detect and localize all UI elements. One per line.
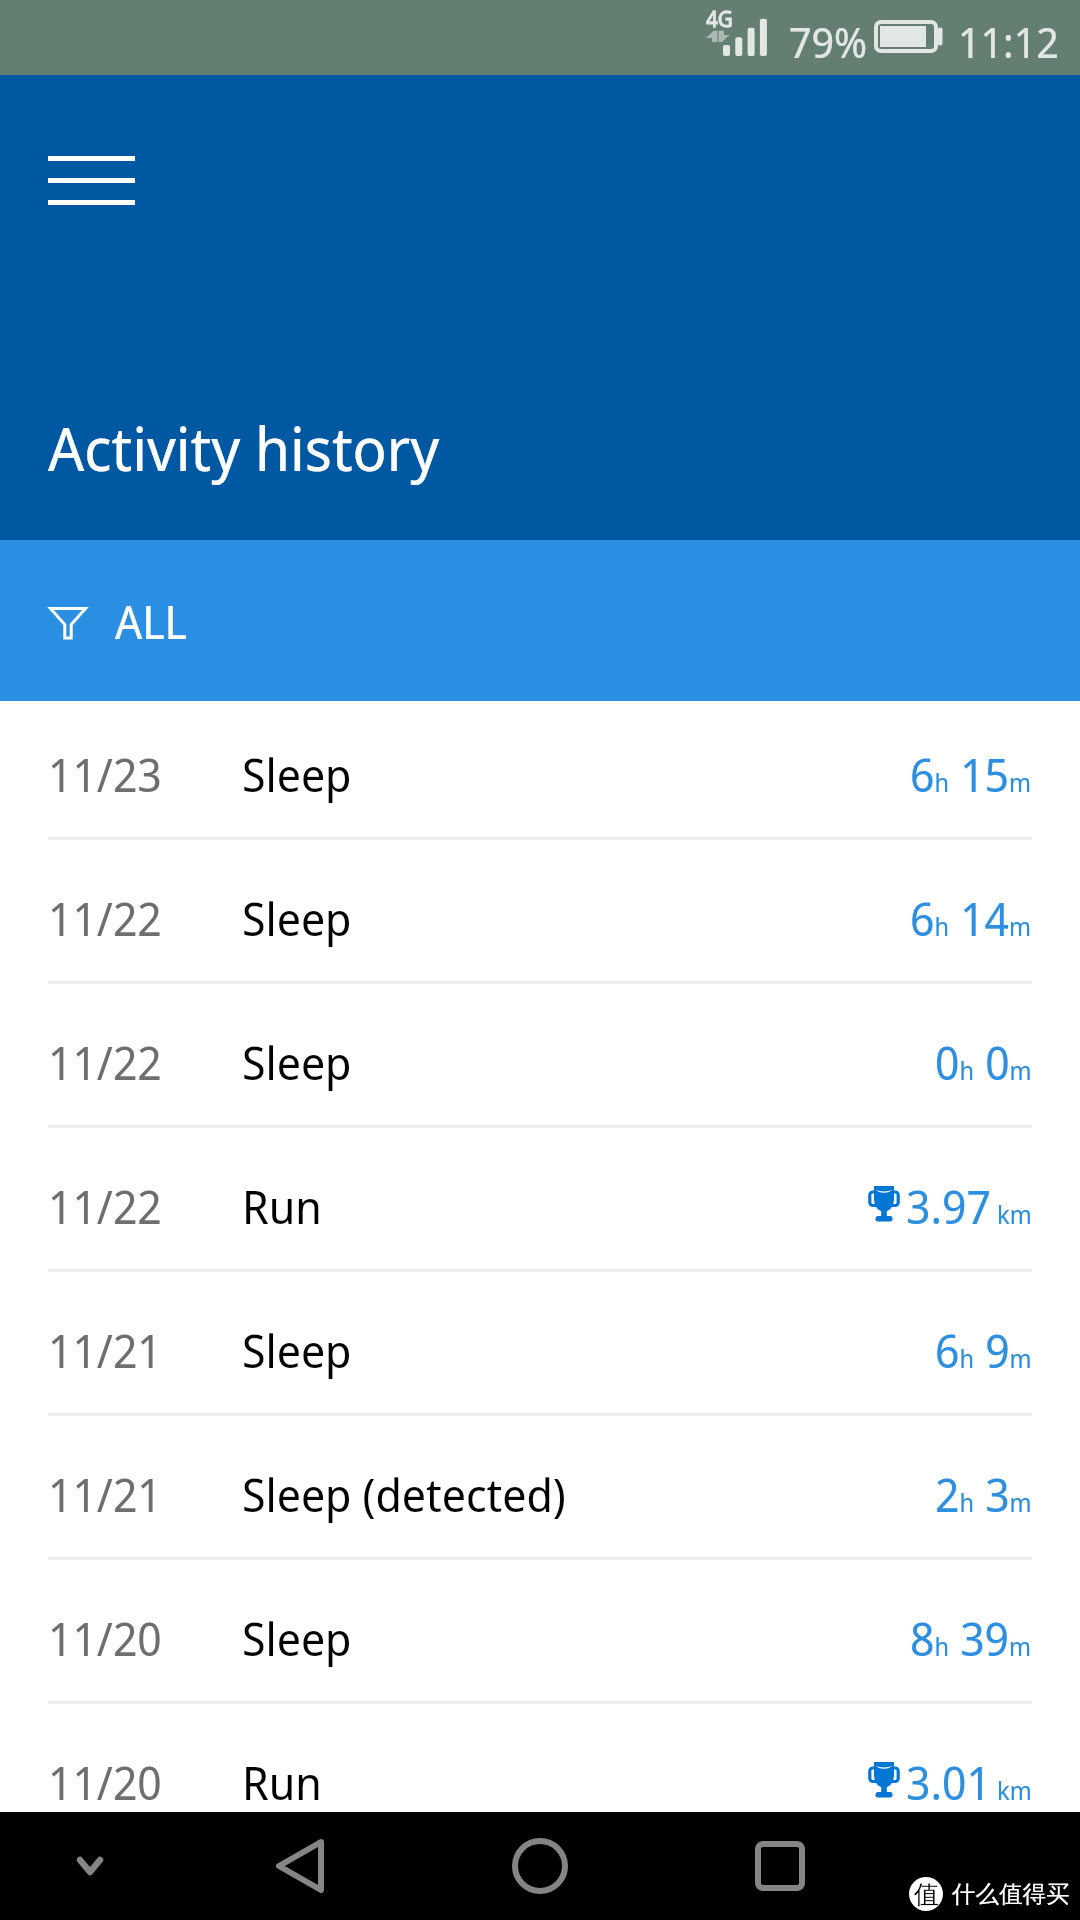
staticText: 11/22 [48, 887, 162, 949]
staticText: 6h 15m [910, 743, 1032, 805]
staticText: Sleep [242, 1607, 352, 1669]
button[interactable]: 11/22 [0, 984, 1080, 1128]
staticText: 3.97 km [906, 1175, 1032, 1237]
staticText: Run [242, 1751, 322, 1812]
staticText: 11/21 [48, 1319, 162, 1381]
staticText: Sleep [242, 887, 352, 949]
staticText: Sleep [242, 743, 352, 805]
staticText: 2h 3m [935, 1463, 1032, 1525]
staticText: 6h 9m [935, 1319, 1032, 1381]
button[interactable]: Home [495, 1833, 585, 1899]
staticText: 值 [914, 1879, 939, 1910]
staticText: Sleep [242, 1319, 352, 1381]
button[interactable]: 11/20 [0, 1560, 1080, 1704]
staticText: 8h 39m [910, 1607, 1032, 1669]
staticText: Activity history [48, 407, 440, 489]
button[interactable]: Recent apps [735, 1833, 825, 1899]
staticText: 11/23 [48, 743, 162, 805]
staticText: 79% [789, 13, 868, 70]
staticText: 什么值得买 [952, 1879, 1070, 1909]
staticText: 11/22 [48, 1175, 162, 1237]
staticText: 11/21 [48, 1463, 162, 1525]
staticText: Run [242, 1175, 322, 1237]
staticText: Sleep [242, 1031, 352, 1093]
button[interactable]: 11/23 [0, 701, 1080, 840]
button[interactable]: 11/20 [0, 1704, 1080, 1812]
staticText: 11/22 [48, 1031, 162, 1093]
staticText: 3.01 km [906, 1751, 1032, 1812]
button[interactable]: 11/21 [0, 1416, 1080, 1560]
button[interactable]: Hide keyboard [45, 1836, 135, 1896]
staticText: 0h 0m [935, 1031, 1032, 1093]
button[interactable]: 11/22 [0, 840, 1080, 984]
staticText: 11/20 [48, 1751, 162, 1812]
button[interactable]: 11/22 [0, 1128, 1080, 1272]
staticText: Sleep (detected) [242, 1463, 566, 1525]
button[interactable]: ALL [0, 540, 1080, 701]
button[interactable]: 11/21 [0, 1272, 1080, 1416]
staticText: 11/20 [48, 1607, 162, 1669]
button[interactable]: Open navigation menu [24, 131, 159, 221]
staticText: 11:12 [958, 13, 1059, 70]
staticText: 4G [706, 3, 733, 33]
button[interactable]: Back [255, 1833, 345, 1899]
staticText: 6h 14m [910, 887, 1032, 949]
staticText: ALL [115, 591, 187, 652]
